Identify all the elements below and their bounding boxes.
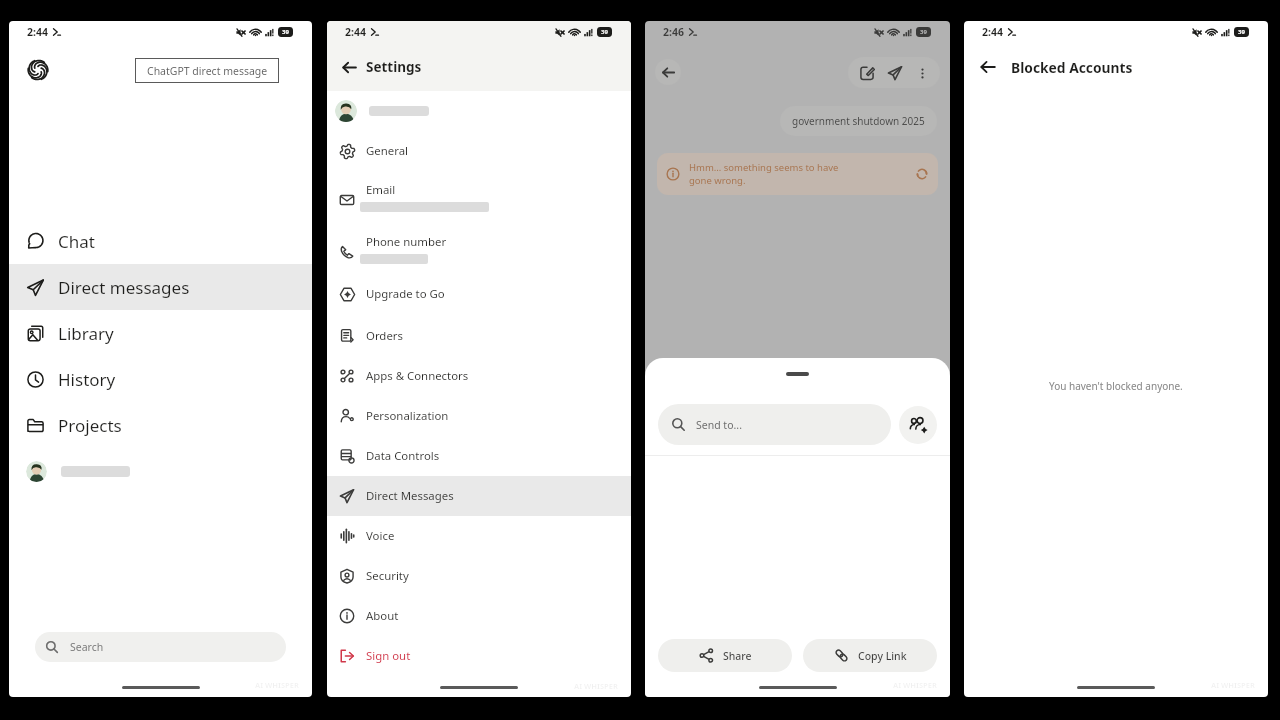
button[interactable]: Back [338,56,360,78]
staticText: 2:46 [663,25,684,39]
button[interactable]: Search [35,632,286,662]
button[interactable]: About [327,596,631,636]
staticText: Blocked Accounts [1011,58,1133,77]
button[interactable]: Send to... [658,404,891,445]
button[interactable]: More options [915,66,929,80]
button[interactable]: Direct messages [9,264,312,310]
button[interactable]: Upgrade to Go [327,271,631,316]
staticText: 2:44 [345,25,366,39]
staticText: General [366,143,408,159]
button[interactable]: Security [327,556,631,596]
button[interactable]: ChatGPT direct message [135,58,279,83]
staticText: AI WHISPER [255,680,299,690]
button[interactable]: Hmm… something seems to have gone wrong. [666,153,929,195]
staticText: 39 [920,28,927,36]
staticText: AI WHISPER [1211,680,1255,690]
staticText: Copy Link [858,649,907,663]
staticText: AI WHISPER [574,681,618,691]
staticText: Personalization [366,408,449,424]
button[interactable]: Library [9,310,312,356]
button[interactable]: Share [658,639,792,672]
staticText: 39 [601,28,608,36]
button[interactable]: OpenAI [26,58,50,82]
button[interactable]: Apps & Connectors [327,356,631,396]
staticText: AI WHISPER [893,680,937,690]
button[interactable]: Sign out [327,636,631,676]
button[interactable] [9,448,312,494]
staticText: 2:44 [982,25,1003,39]
button[interactable]: Add people [899,406,937,444]
button[interactable]: Copy Link [803,639,937,672]
staticText: You haven't blocked anyone. [1049,379,1183,393]
staticText: Share [723,649,752,663]
staticText: Library [58,322,114,345]
button[interactable]: Orders [327,316,631,356]
staticText: Chat [58,230,95,253]
staticText: Upgrade to Go [366,286,445,302]
staticText: Direct messages [58,276,190,299]
button[interactable]: Back [655,59,681,85]
staticText: government shutdown 2025 [792,114,925,128]
staticText: Hmm… something seems to have gone wrong. [689,161,915,187]
button[interactable]: Projects [9,402,312,448]
staticText: About [366,608,399,624]
staticText: 39 [282,28,289,36]
staticText: Security [366,568,409,584]
staticText: ChatGPT direct message [147,64,268,78]
button[interactable]: Personalization [327,396,631,436]
button[interactable]: Voice [327,516,631,556]
button[interactable] [327,91,631,131]
staticText: Projects [58,414,122,437]
button[interactable]: Direct Messages [327,476,631,516]
staticText: 39 [1238,28,1245,36]
button[interactable]: Send [887,65,903,81]
button[interactable]: General [327,131,631,171]
staticText: Orders [366,328,403,344]
staticText: Settings [366,58,422,76]
button[interactable]: Back [977,56,999,78]
staticText: Send to... [696,418,742,432]
button[interactable]: Chat [9,218,312,264]
staticText: History [58,368,116,391]
staticText: 2:44 [27,25,48,39]
button[interactable]: New chat [859,65,875,81]
button[interactable]: Data Controls [327,436,631,476]
staticText: Search [70,640,104,654]
staticText: Phone number [366,234,447,250]
button[interactable]: History [9,356,312,402]
staticText: Email [366,182,396,198]
button[interactable]: Email [327,171,631,223]
staticText: Voice [366,528,395,544]
staticText: Data Controls [366,448,440,464]
button[interactable]: Phone number [327,223,631,271]
staticText: Direct Messages [366,488,454,504]
staticText: Apps & Connectors [366,368,469,384]
staticText: Sign out [366,648,411,664]
